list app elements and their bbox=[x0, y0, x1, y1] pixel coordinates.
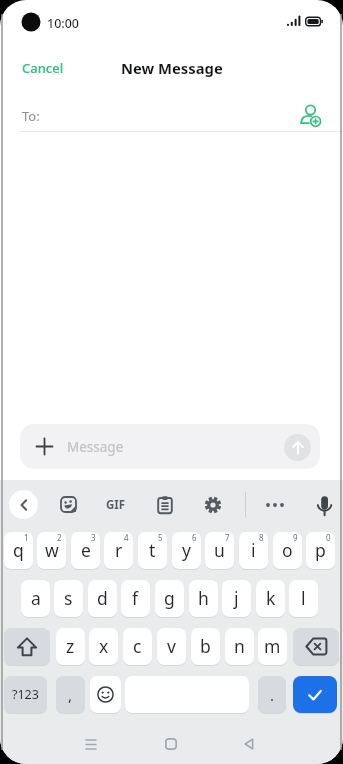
staticText: k bbox=[266, 586, 276, 610]
button[interactable]: d bbox=[88, 580, 117, 617]
staticText: l bbox=[301, 586, 306, 610]
staticText: GIF bbox=[106, 497, 126, 513]
staticText: p bbox=[315, 538, 326, 562]
staticText: g bbox=[164, 586, 175, 610]
staticText: , bbox=[68, 685, 73, 705]
staticText: 0 bbox=[326, 532, 331, 543]
button[interactable]: GIF bbox=[98, 492, 134, 517]
staticText: f bbox=[132, 586, 139, 610]
staticText: w bbox=[45, 538, 59, 562]
button[interactable] bbox=[152, 492, 177, 517]
button[interactable]: , bbox=[56, 676, 85, 713]
button[interactable]: c bbox=[123, 628, 152, 665]
button[interactable]: x bbox=[89, 628, 118, 665]
button[interactable] bbox=[293, 628, 339, 665]
staticText: 8 bbox=[259, 532, 264, 543]
button[interactable]: Message bbox=[20, 424, 320, 469]
button[interactable] bbox=[90, 676, 121, 713]
button[interactable]: k bbox=[256, 580, 285, 617]
staticText: Message bbox=[67, 438, 124, 456]
staticText: t bbox=[149, 538, 156, 562]
button[interactable]: g bbox=[155, 580, 184, 617]
staticText: 5 bbox=[158, 532, 163, 543]
button[interactable] bbox=[158, 732, 184, 756]
button[interactable]: f bbox=[121, 580, 150, 617]
staticText: m bbox=[264, 634, 281, 658]
staticText: q bbox=[13, 538, 24, 562]
button[interactable] bbox=[260, 492, 289, 517]
staticText: u bbox=[214, 538, 225, 562]
button[interactable] bbox=[294, 101, 326, 129]
button[interactable]: s bbox=[54, 580, 83, 617]
staticText: 10:00 bbox=[47, 15, 80, 32]
staticText: 6 bbox=[192, 532, 197, 543]
button[interactable] bbox=[200, 492, 225, 517]
button[interactable]: i bbox=[239, 532, 268, 569]
staticText: 2 bbox=[57, 532, 62, 543]
staticText: y bbox=[182, 538, 191, 562]
button[interactable]: o bbox=[273, 532, 302, 569]
button[interactable]: v bbox=[157, 628, 186, 665]
staticText: 7 bbox=[225, 532, 230, 543]
button[interactable]: r bbox=[104, 532, 133, 569]
staticText: n bbox=[234, 634, 245, 658]
button[interactable]: p bbox=[306, 532, 335, 569]
button[interactable] bbox=[56, 492, 81, 517]
button[interactable]: h bbox=[189, 580, 218, 617]
staticText: 4 bbox=[124, 532, 129, 543]
staticText: To: bbox=[22, 107, 40, 125]
button[interactable]: u bbox=[205, 532, 234, 569]
staticText: New Message bbox=[121, 58, 223, 78]
button[interactable] bbox=[9, 490, 38, 519]
button[interactable]: e bbox=[71, 532, 100, 569]
staticText: c bbox=[133, 634, 142, 658]
staticText: s bbox=[64, 586, 73, 610]
staticText: v bbox=[167, 634, 176, 658]
staticText: h bbox=[198, 586, 209, 610]
button[interactable]: y bbox=[172, 532, 201, 569]
button[interactable]: t bbox=[138, 532, 167, 569]
staticText: 9 bbox=[293, 532, 298, 543]
button[interactable]: n bbox=[225, 628, 254, 665]
staticText: z bbox=[66, 634, 75, 658]
staticText: x bbox=[99, 634, 109, 658]
button[interactable] bbox=[78, 732, 104, 756]
button[interactable]: q bbox=[4, 532, 33, 569]
button[interactable]: Cancel bbox=[12, 52, 74, 84]
staticText: 3 bbox=[91, 532, 96, 543]
staticText: d bbox=[97, 586, 108, 610]
staticText: ?123 bbox=[12, 686, 39, 703]
button[interactable]: l bbox=[289, 580, 318, 617]
staticText: b bbox=[200, 634, 211, 658]
staticText: a bbox=[31, 586, 41, 610]
button[interactable]: a bbox=[21, 580, 50, 617]
button[interactable]: ?123 bbox=[4, 676, 47, 713]
staticText: e bbox=[81, 538, 91, 562]
staticText: j bbox=[234, 586, 239, 610]
button[interactable]: . bbox=[258, 676, 286, 713]
staticText: i bbox=[251, 538, 256, 562]
button[interactable]: m bbox=[258, 628, 287, 665]
staticText: Cancel bbox=[22, 59, 64, 77]
button[interactable] bbox=[4, 628, 50, 665]
button[interactable] bbox=[293, 676, 337, 713]
button[interactable]: w bbox=[37, 532, 66, 569]
button[interactable] bbox=[284, 434, 311, 461]
button[interactable] bbox=[236, 732, 262, 756]
staticText: o bbox=[282, 538, 293, 562]
button[interactable] bbox=[312, 492, 337, 519]
button[interactable]: b bbox=[191, 628, 220, 665]
staticText: r bbox=[115, 538, 123, 562]
button[interactable]: z bbox=[56, 628, 85, 665]
staticText: . bbox=[270, 685, 275, 705]
staticText: 1 bbox=[24, 532, 29, 543]
button[interactable]: j bbox=[222, 580, 251, 617]
